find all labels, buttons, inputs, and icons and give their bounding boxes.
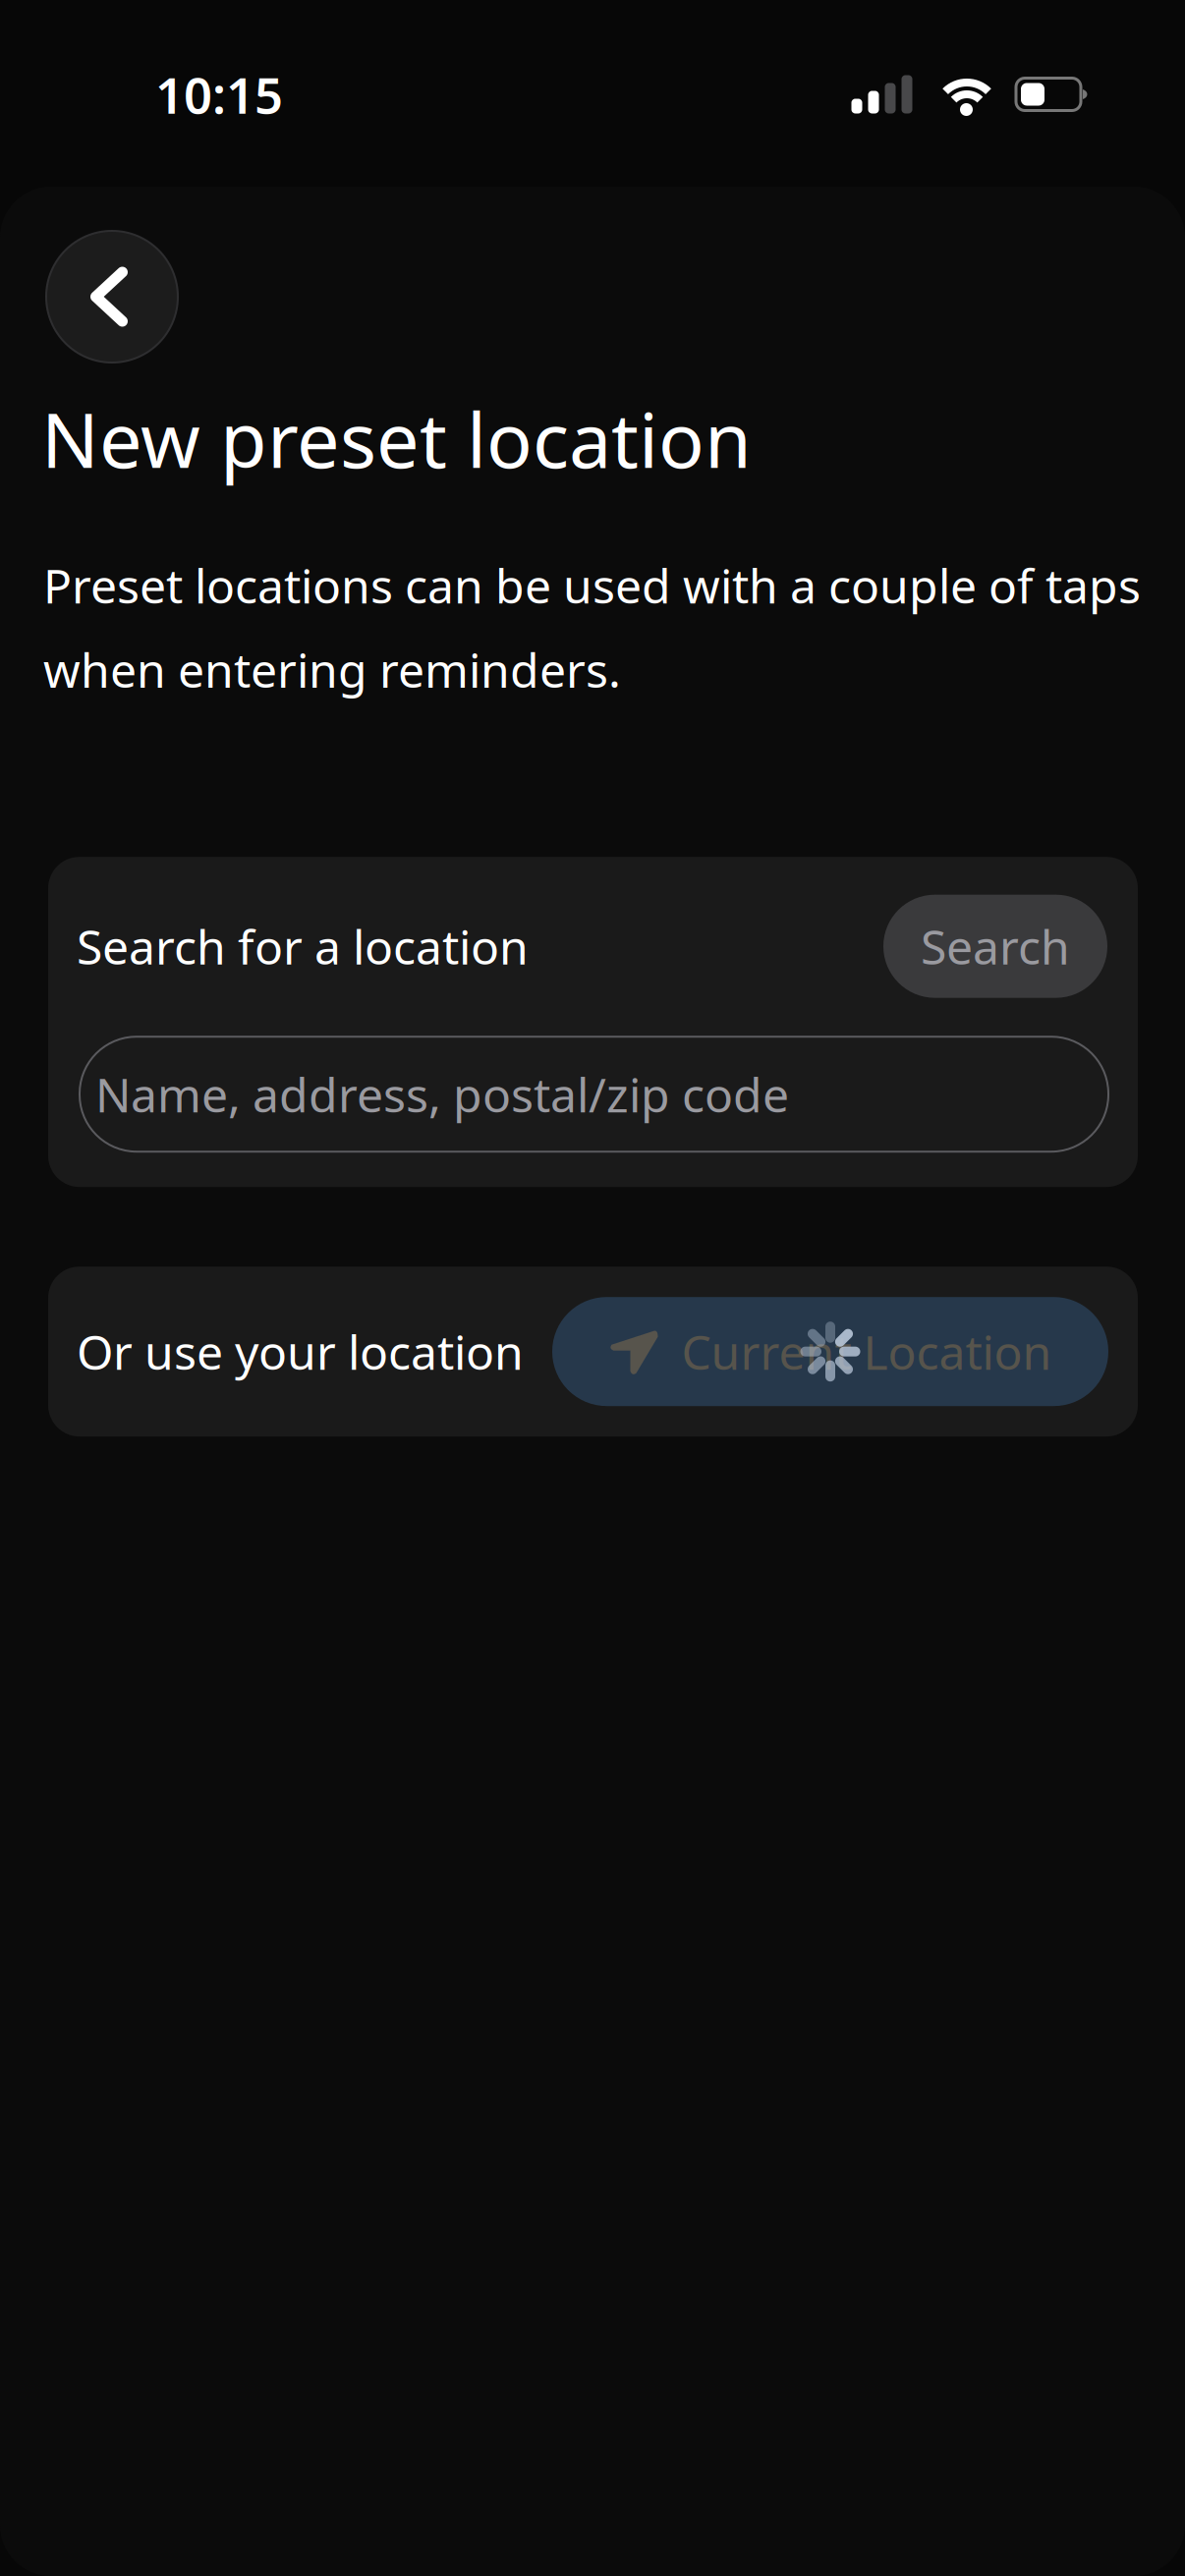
staticText: 10:15 <box>155 61 283 127</box>
staticText: Or use your location <box>77 1320 524 1383</box>
staticText: New preset location <box>41 388 752 489</box>
staticText: Preset locations can be used with a coup… <box>43 554 1141 616</box>
staticText: Search for a location <box>77 915 529 978</box>
staticText: Current Location <box>681 1320 1052 1383</box>
button[interactable]: Back <box>46 231 178 363</box>
staticText: when entering reminders. <box>43 638 621 701</box>
staticText: Search <box>921 915 1070 978</box>
staticText: Name, address, postal/zip code <box>95 1063 789 1125</box>
button[interactable]: Current Location <box>552 1297 1108 1406</box>
button[interactable]: Search <box>883 895 1107 998</box>
